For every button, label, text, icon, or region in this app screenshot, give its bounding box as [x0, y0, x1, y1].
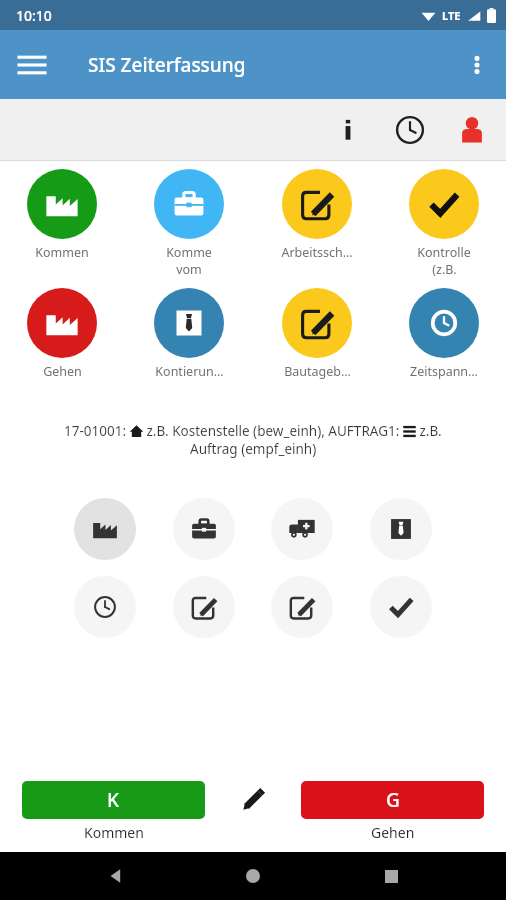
- button[interactable]: Time: [390, 110, 430, 150]
- staticText: SIS Zeiterfassung: [88, 52, 246, 78]
- button[interactable]: Komme: [154, 169, 224, 278]
- button[interactable]: Recents: [369, 854, 413, 898]
- staticText: Auftrag (empf_einh): [190, 440, 317, 458]
- staticText: Arbeitssch…: [281, 244, 353, 261]
- button[interactable]: Gehen: [27, 288, 97, 380]
- button[interactable]: Kontierun…: [154, 288, 224, 380]
- button[interactable]: Kommen: [27, 169, 97, 261]
- button[interactable]: Briefcase: [173, 498, 235, 560]
- button[interactable]: Zeitspann…: [409, 288, 479, 380]
- button[interactable]: Tie: [370, 498, 432, 560]
- button[interactable]: Factory: [74, 498, 136, 560]
- staticText: (z.B.: [432, 261, 457, 278]
- staticText: Kommen: [35, 244, 89, 261]
- staticText: Gehen: [371, 823, 415, 842]
- button[interactable]: Ambulance: [271, 498, 333, 560]
- staticText: Kommen: [84, 823, 144, 842]
- button[interactable]: Confirm: [370, 576, 432, 638]
- staticText: Kontierun…: [155, 363, 224, 380]
- button[interactable]: Home: [231, 854, 275, 898]
- button[interactable]: More options: [454, 42, 500, 88]
- staticText: vom: [176, 261, 202, 278]
- button[interactable]: Bautageb…: [282, 288, 352, 380]
- button[interactable]: Kontrolle: [409, 169, 479, 278]
- staticText: 17-01001:: [64, 422, 130, 440]
- staticText: G: [386, 787, 400, 813]
- button[interactable]: Back: [94, 854, 138, 898]
- staticText: 10:10: [16, 6, 52, 25]
- button[interactable]: Menu: [8, 41, 56, 89]
- staticText: Bautageb…: [284, 363, 351, 380]
- staticText: K: [107, 787, 120, 813]
- staticText: Zeitspann…: [410, 363, 478, 380]
- staticText: Gehen: [43, 363, 82, 380]
- button[interactable]: Info: [328, 110, 368, 150]
- staticText: Kontrolle: [417, 244, 471, 261]
- staticText: Komme: [166, 244, 212, 261]
- button[interactable]: Clock: [74, 576, 136, 638]
- button[interactable]: Edit entry: [205, 781, 301, 819]
- button[interactable]: Account: [452, 110, 492, 150]
- button[interactable]: Arbeitssch…: [281, 169, 353, 261]
- button[interactable]: Edit: [173, 576, 235, 638]
- button[interactable]: G: [301, 781, 484, 819]
- staticText: z.B. Kostenstelle (bew_einh), AUFTRAG1:: [143, 422, 403, 440]
- staticText: z.B.: [416, 422, 442, 440]
- staticText: LTE: [442, 8, 461, 23]
- button[interactable]: Edit 2: [271, 576, 333, 638]
- button[interactable]: K: [22, 781, 205, 819]
